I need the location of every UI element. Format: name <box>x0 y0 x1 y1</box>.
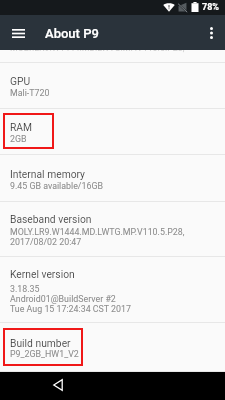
button[interactable]: RAM <box>0 109 225 155</box>
staticText: MOLY.LR9.W1444.MD.LWTG.MP.V110.5.P28, 20… <box>10 227 185 247</box>
button[interactable]: Navigation menu <box>6 21 30 45</box>
staticText: RAM <box>10 121 33 133</box>
staticText: 3.18.35 Android01@BuildServer #2 Tue Aug… <box>10 284 132 314</box>
staticText: Build number <box>10 337 71 349</box>
button[interactable]: Build number <box>0 323 225 372</box>
staticText: 2GB <box>10 134 27 144</box>
button[interactable]: Baseband version <box>0 202 225 257</box>
button[interactable]: More options <box>199 21 223 45</box>
staticText: P9_2GB_HW1_V2 <box>10 349 79 359</box>
button[interactable]: Internal memory <box>0 155 225 202</box>
button[interactable]: GPU <box>0 63 225 109</box>
staticText: GPU <box>10 75 31 87</box>
staticText: Baseband version <box>10 213 92 225</box>
staticText: About P9 <box>45 26 99 41</box>
staticText: MOLY.LR9.W1444.MD.LWTG.MP.V110.5.P28, <box>10 50 185 53</box>
staticText: Internal memory <box>10 168 85 180</box>
button[interactable]: Kernel version <box>0 257 225 323</box>
staticText: 9.45 GB available/16GB <box>10 181 103 191</box>
staticText: Kernel version <box>10 268 75 280</box>
staticText: Mali-T720 <box>10 88 50 98</box>
button[interactable]: Back <box>49 376 67 394</box>
staticText: 78% <box>202 2 219 13</box>
